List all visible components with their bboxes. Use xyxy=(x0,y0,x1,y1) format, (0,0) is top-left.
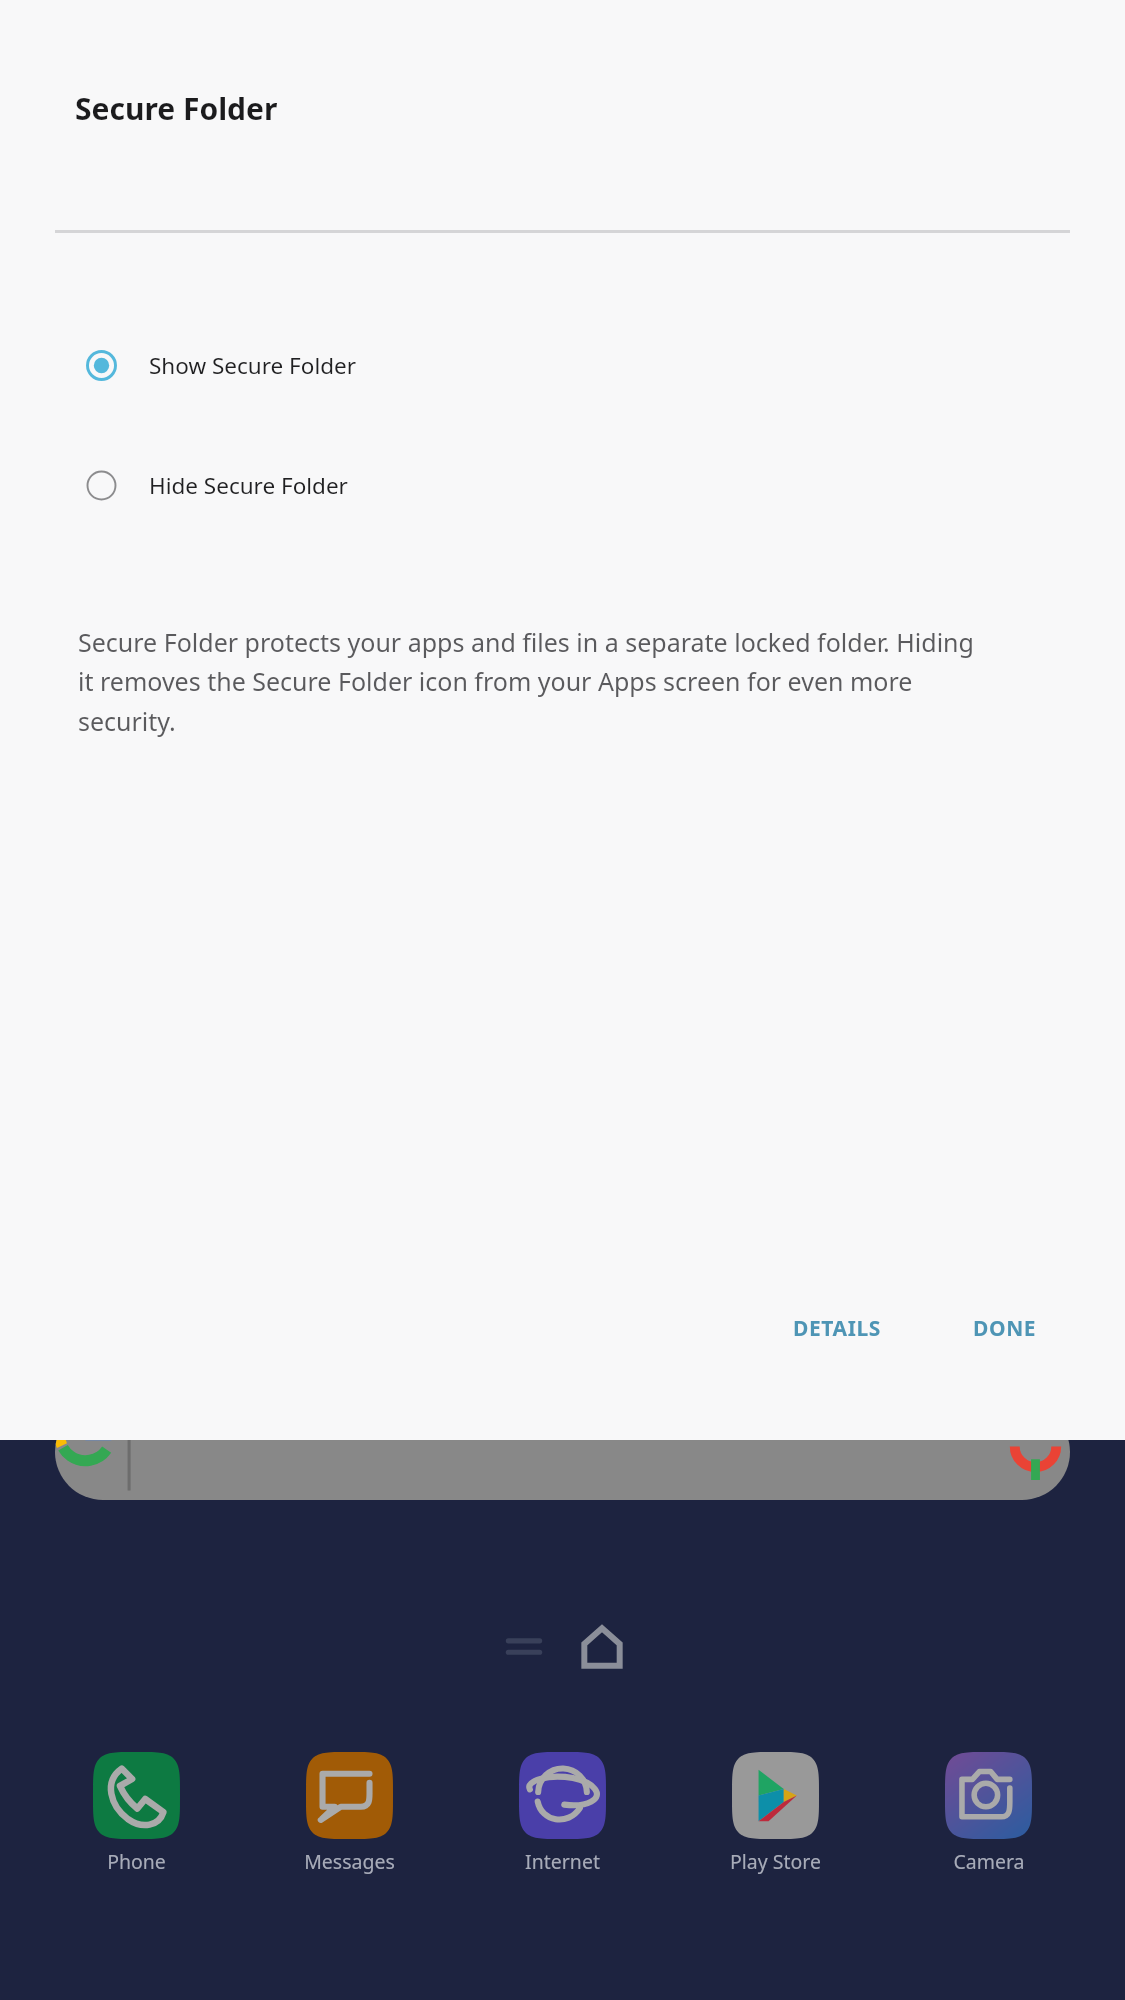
staticText: Secure Folder protects your apps and fil… xyxy=(78,625,988,739)
staticText: Camera xyxy=(953,1848,1025,1875)
button[interactable]: Camera xyxy=(882,1752,1095,1875)
staticText: Phone xyxy=(107,1848,166,1875)
button[interactable]: Messages xyxy=(243,1752,456,1875)
button[interactable]: Show Secure Folder xyxy=(60,305,1060,425)
button[interactable]: Hide Secure Folder xyxy=(60,425,1060,545)
button[interactable]: DONE xyxy=(957,1300,1053,1357)
staticText: Play Store xyxy=(730,1848,821,1875)
button[interactable]: Phone xyxy=(30,1752,243,1875)
button[interactable]: Internet xyxy=(456,1752,669,1875)
staticText: Messages xyxy=(304,1848,395,1875)
staticText: DETAILS xyxy=(793,1314,881,1343)
staticText: DONE xyxy=(973,1314,1037,1343)
staticText: Hide Secure Folder xyxy=(149,470,348,501)
button[interactable]: Play Store xyxy=(669,1752,882,1875)
staticText: Secure Folder xyxy=(75,88,278,129)
button[interactable]: DETAILS xyxy=(777,1300,897,1357)
staticText: Internet xyxy=(525,1848,600,1875)
staticText: Show Secure Folder xyxy=(149,350,357,381)
button[interactable]: Search xyxy=(55,1404,1070,1500)
